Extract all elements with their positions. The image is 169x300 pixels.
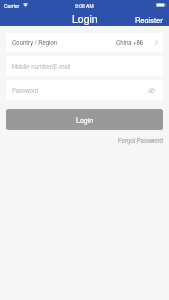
button[interactable]: Forgot Password: [118, 134, 163, 147]
staticText: Login: [72, 11, 98, 26]
staticText: 9:08 AM: [75, 2, 94, 9]
staticText: Carrier: [4, 2, 20, 9]
staticText: Forgot Password: [118, 136, 163, 145]
staticText: China: [116, 38, 132, 47]
button[interactable]: Show password: [144, 84, 158, 97]
button[interactable]: Password: [6, 80, 163, 100]
staticText: Password: [12, 86, 39, 95]
staticText: Register: [135, 14, 163, 23]
staticText: Login: [76, 115, 94, 125]
button[interactable]: Register: [129, 11, 169, 26]
staticText: +86: [133, 38, 144, 47]
button[interactable]: Country / Region: [6, 33, 163, 52]
staticText: Mobile number/E-mail: [12, 62, 71, 71]
button[interactable]: Login: [6, 109, 163, 130]
button[interactable]: Mobile number/E-mail: [6, 56, 163, 76]
staticText: Country / Region: [12, 38, 58, 47]
